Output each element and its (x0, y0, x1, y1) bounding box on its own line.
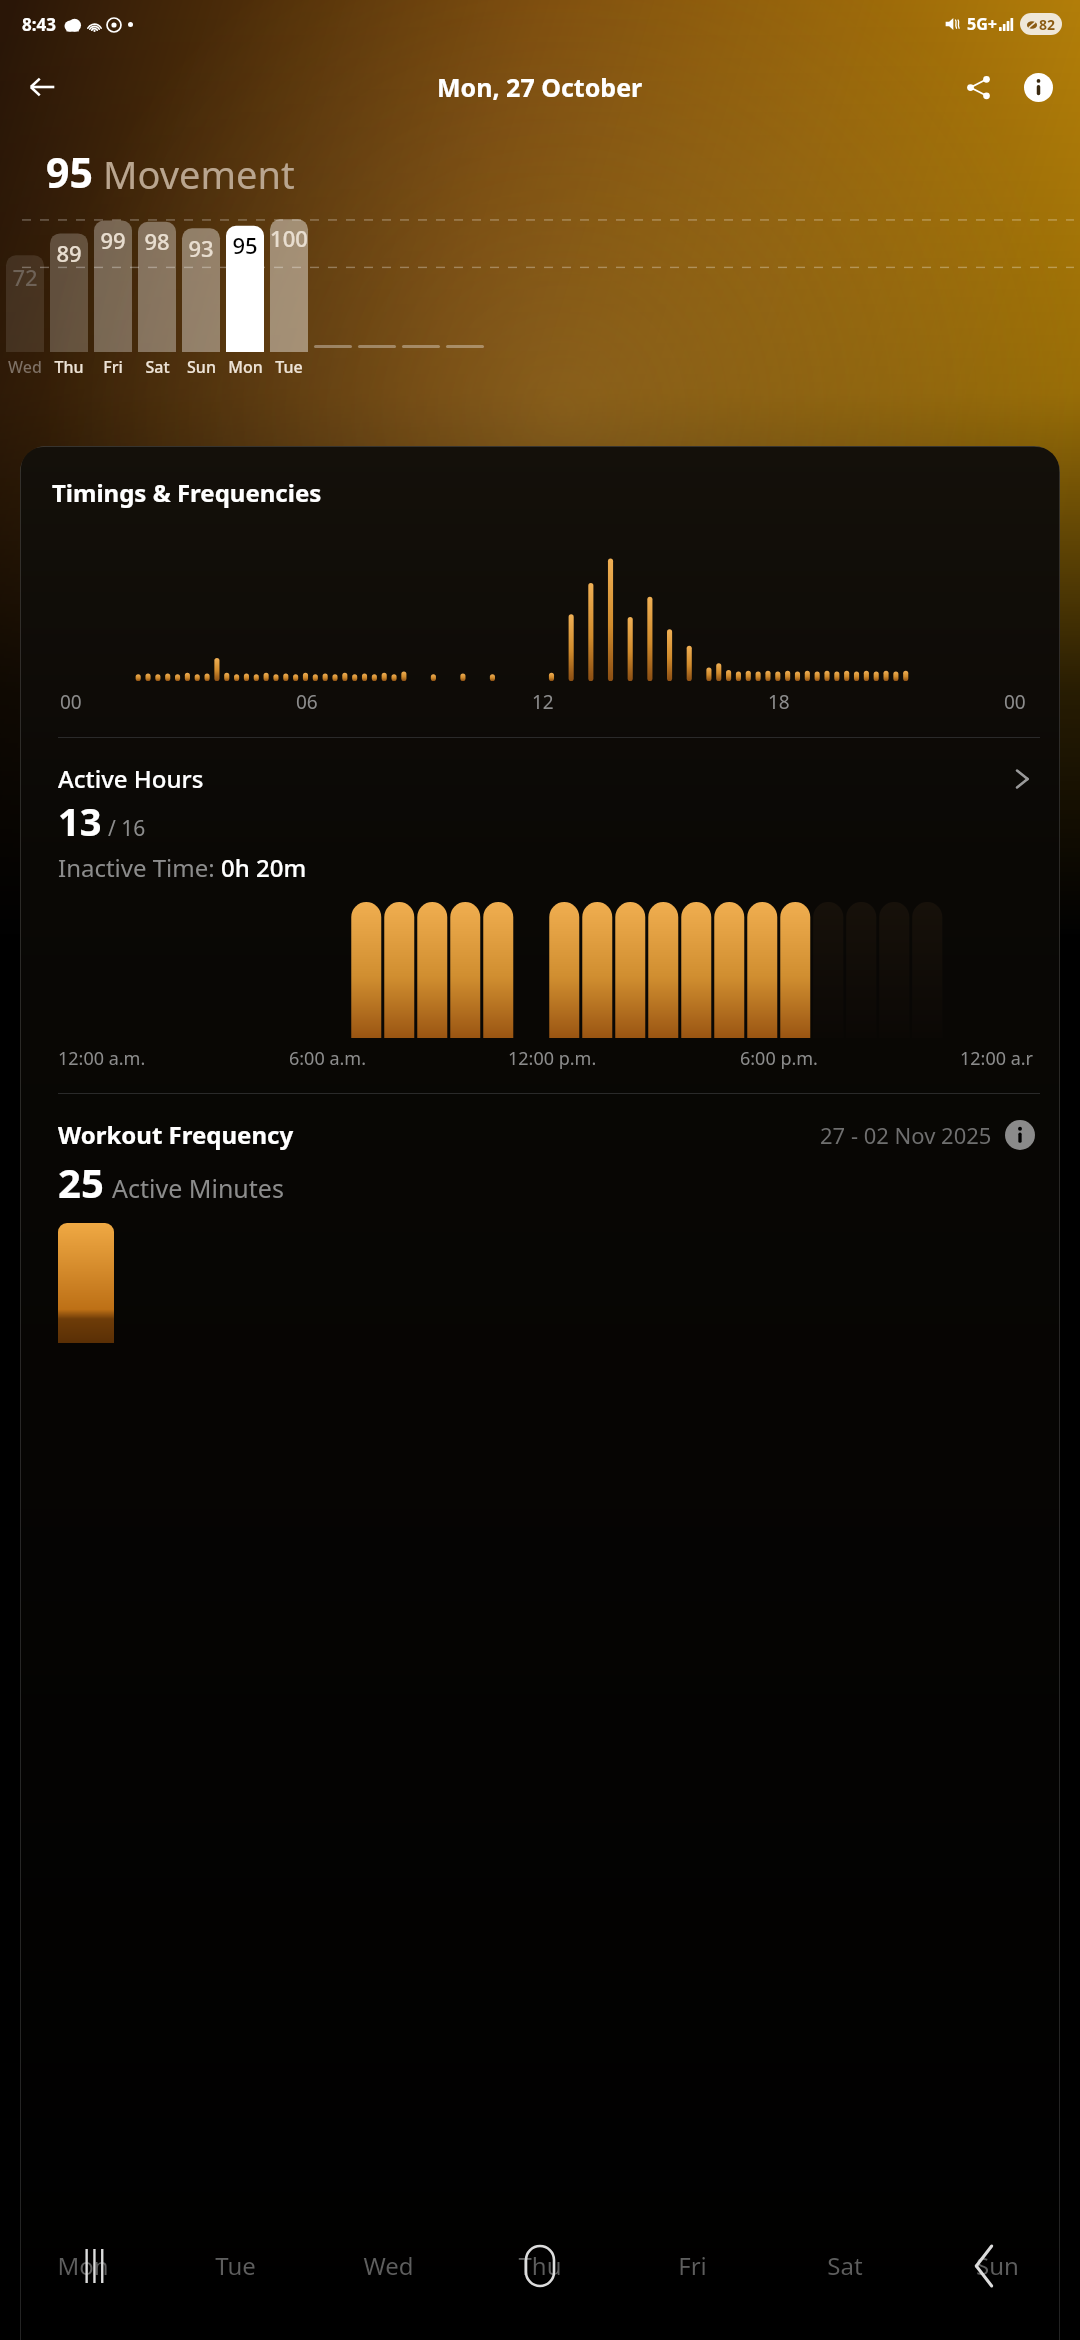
button[interactable]: Tue (196, 2230, 274, 2300)
staticText: 99 (100, 225, 126, 255)
staticText: 25 (58, 1155, 104, 1209)
staticText: Sun (187, 356, 216, 378)
button[interactable]: Share (952, 61, 1004, 113)
staticText: 12:00 p.m. (508, 1046, 597, 1071)
staticText: Sat (827, 2249, 863, 2282)
button[interactable]: Home (500, 2238, 580, 2294)
staticText: Sat (145, 356, 170, 378)
staticText: 100 (270, 223, 308, 253)
staticText: 8:43 (22, 13, 56, 36)
staticText: / 16 (108, 814, 146, 843)
staticText: Movement (103, 148, 295, 200)
staticText: 0h 20m (221, 851, 307, 884)
staticText: Mon (57, 2249, 109, 2282)
staticText: 12:00 a.r (960, 1046, 1034, 1071)
staticText: Thu (54, 356, 84, 378)
staticText: 27 - 02 Nov 2025 (820, 1120, 992, 1150)
button[interactable]: Sun (958, 2230, 1036, 2300)
button[interactable]: Back (944, 2238, 1024, 2294)
staticText: 13 (58, 795, 102, 847)
staticText: Inactive Time: (58, 851, 221, 884)
staticText: 6:00 a.m. (289, 1046, 366, 1071)
staticText: 12 (532, 689, 554, 715)
staticText: 00 (60, 689, 82, 715)
staticText: Workout Frequency (58, 1118, 294, 1151)
staticText: 95 (232, 230, 258, 260)
button[interactable]: 72 (6, 210, 44, 380)
staticText: Thu (518, 2249, 562, 2282)
staticText: 89 (56, 238, 82, 268)
button[interactable]: Thu (501, 2230, 579, 2300)
button[interactable]: Information (1012, 61, 1064, 113)
staticText: 93 (188, 233, 214, 263)
staticText: 82 (1039, 15, 1056, 34)
button[interactable]: Fri (653, 2230, 731, 2300)
staticText: Timings & Frequencies (52, 476, 322, 509)
button[interactable]: 98 (138, 210, 176, 380)
staticText: 5G+ (967, 13, 997, 35)
staticText: Sun (976, 2249, 1019, 2282)
staticText: 98 (144, 226, 170, 256)
staticText: Mon (228, 356, 263, 378)
staticText: 00 (1004, 689, 1026, 715)
staticText: 95 (46, 144, 93, 200)
button[interactable]: Workout Frequency (20, 1094, 1060, 1343)
button[interactable]: 100 (270, 210, 308, 380)
staticText: Tue (215, 2249, 256, 2282)
button[interactable]: Sat (806, 2230, 884, 2300)
staticText: Fri (103, 356, 123, 378)
button[interactable]: Mon (44, 2230, 122, 2300)
staticText: 6:00 p.m. (740, 1046, 818, 1071)
staticText: 12:00 a.m. (58, 1046, 146, 1071)
button[interactable]: Active Hours (20, 738, 1060, 1093)
staticText: 18 (768, 689, 790, 715)
button[interactable]: Wed (349, 2230, 427, 2300)
staticText: Tue (275, 356, 303, 378)
staticText: Active Hours (58, 762, 204, 795)
button[interactable]: 95 (226, 210, 264, 380)
button[interactable]: 99 (94, 210, 132, 380)
button[interactable]: Workout frequency info (1004, 1119, 1036, 1151)
staticText: Mon, 27 October (437, 70, 643, 104)
button[interactable]: 89 (50, 210, 88, 380)
button[interactable]: 93 (182, 210, 220, 380)
staticText: Wed (8, 356, 42, 378)
button[interactable]: Recent apps (56, 2238, 136, 2294)
staticText: Wed (363, 2249, 414, 2282)
staticText: 06 (296, 689, 318, 715)
staticText: Active Minutes (112, 1171, 284, 1205)
staticText: Fri (678, 2249, 707, 2282)
staticText: 72 (12, 262, 38, 292)
button[interactable]: Back (14, 59, 70, 115)
